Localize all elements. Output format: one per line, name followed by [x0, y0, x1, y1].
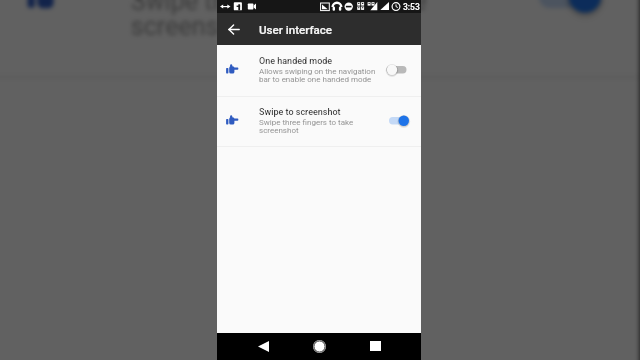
staticText: Allows swiping on the navigation bar to …: [259, 67, 376, 84]
staticText: Swipe to screenshot: [259, 107, 341, 118]
staticText: User interface: [259, 23, 333, 37]
button[interactable]: Navigate up: [227, 18, 251, 40]
button[interactable]: Back: [258, 341, 269, 352]
button[interactable]: Swipe to screenshot: [217, 96, 421, 147]
staticText: Swipe three fingers to take screenshot: [131, 0, 429, 41]
staticText: Swipe three fingers to take screenshot: [259, 118, 354, 135]
button[interactable]: One handed mode: [217, 45, 421, 96]
staticText: One handed mode: [259, 56, 333, 67]
button[interactable]: Home: [313, 340, 326, 353]
button[interactable]: Switch off: [383, 60, 411, 80]
staticText: 3:53: [403, 2, 420, 12]
button[interactable]: Switch on: [383, 111, 411, 131]
